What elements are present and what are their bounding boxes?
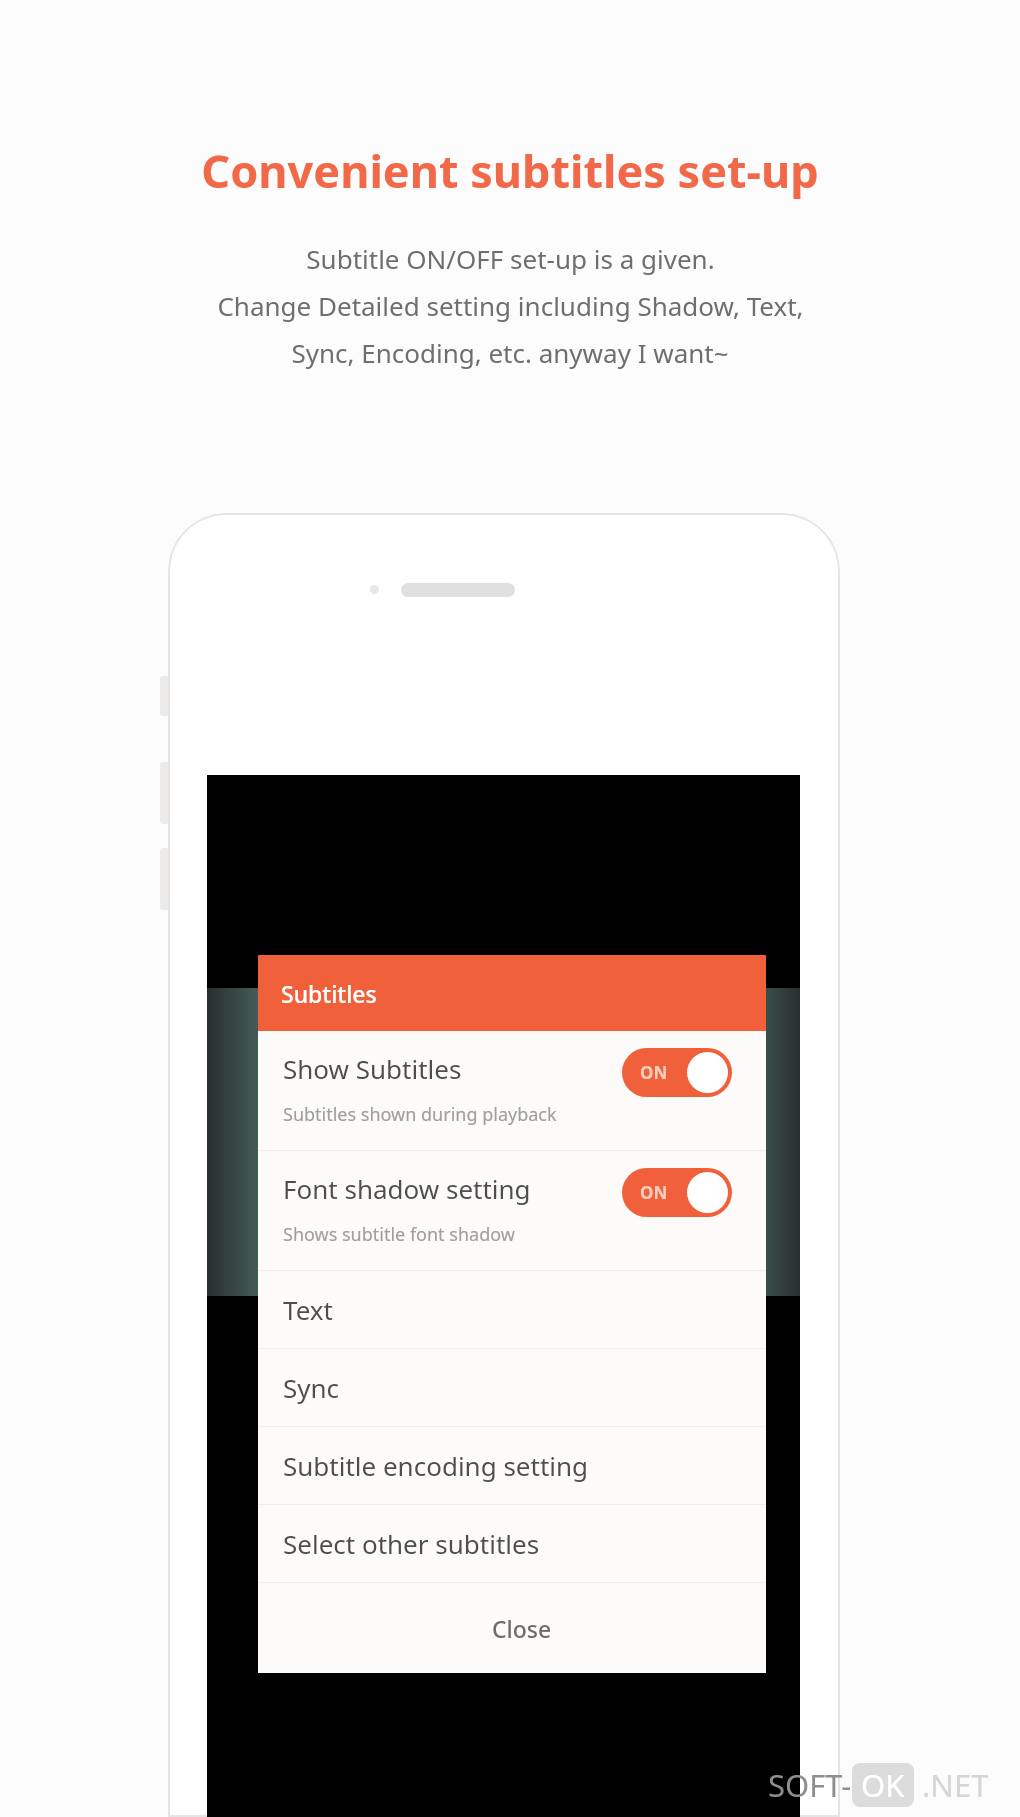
staticText: Sync bbox=[283, 1370, 340, 1405]
staticText: Subtitle encoding setting bbox=[283, 1448, 589, 1483]
button[interactable]: Text bbox=[258, 1271, 766, 1348]
staticText: Subtitles bbox=[281, 978, 377, 1009]
button[interactable]: Show Subtitles bbox=[258, 1031, 766, 1150]
button[interactable]: Subtitle encoding setting bbox=[258, 1427, 766, 1504]
staticText: ON bbox=[640, 1061, 668, 1084]
button[interactable]: Sync bbox=[258, 1349, 766, 1426]
staticText: SOFT- bbox=[768, 1764, 852, 1806]
button[interactable]: Select other subtitles bbox=[258, 1505, 766, 1582]
staticText: OK bbox=[861, 1764, 905, 1806]
staticText: Change Detailed setting including Shadow… bbox=[217, 288, 804, 323]
staticText: Subtitle ON/OFF set-up is a given. bbox=[306, 241, 715, 276]
staticText: ON bbox=[640, 1181, 668, 1204]
button[interactable]: Font shadow setting bbox=[258, 1151, 766, 1270]
staticText: .NET bbox=[914, 1764, 989, 1806]
staticText: Font shadow setting bbox=[283, 1171, 531, 1206]
staticText: Sync, Encoding, etc. anyway I want~ bbox=[291, 335, 729, 370]
staticText: Show Subtitles bbox=[283, 1051, 462, 1086]
button[interactable]: Subtitles bbox=[258, 955, 766, 1031]
staticText: Close bbox=[492, 1613, 552, 1644]
button[interactable]: Show Subtitles switch, on bbox=[622, 1048, 732, 1097]
button[interactable]: Close bbox=[258, 1583, 766, 1673]
staticText: Convenient subtitles set-up bbox=[201, 140, 819, 201]
staticText: Shows subtitle font shadow bbox=[283, 1222, 515, 1247]
staticText: Text bbox=[283, 1292, 333, 1327]
staticText: Select other subtitles bbox=[283, 1526, 540, 1561]
staticText: Subtitles shown during playback bbox=[283, 1102, 557, 1127]
button[interactable]: Font shadow setting switch, on bbox=[622, 1168, 732, 1217]
